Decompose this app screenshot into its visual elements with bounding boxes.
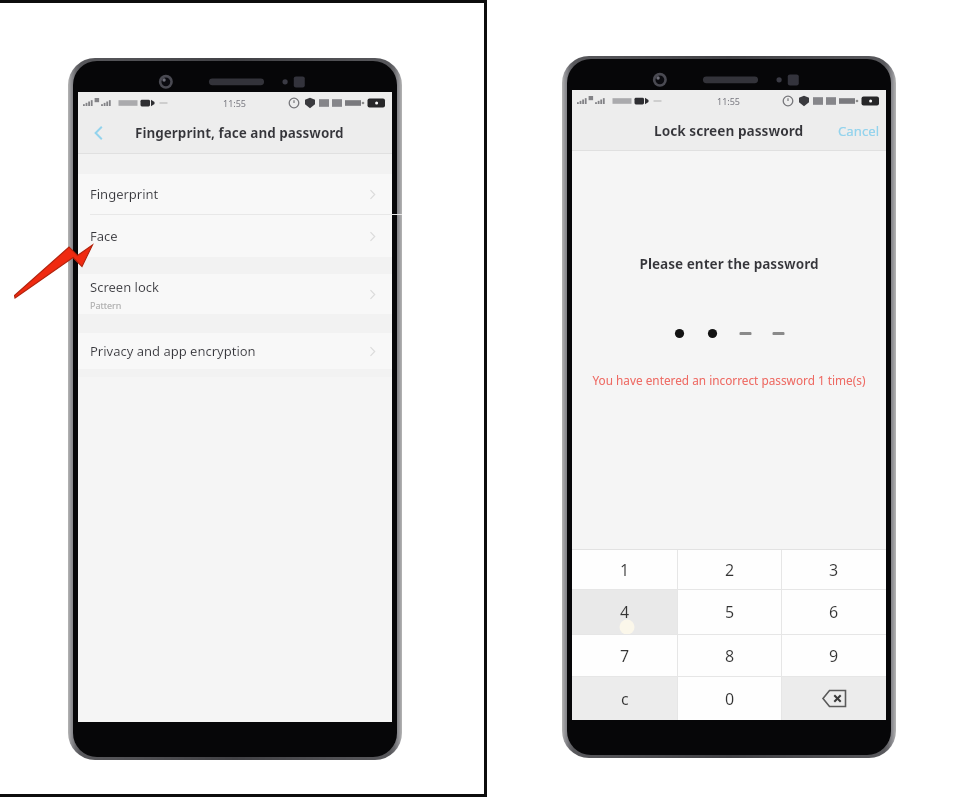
staticText: 1 [620, 559, 630, 581]
button[interactable]: 0 [678, 677, 782, 720]
staticText: You have entered an incorrect password 1… [572, 372, 886, 388]
button[interactable]: Fingerprint [78, 174, 392, 214]
button[interactable]: 3 [782, 550, 886, 589]
button[interactable]: 1 [572, 550, 678, 589]
staticText: 0 [725, 688, 735, 710]
other: Delete [822, 689, 847, 708]
staticText: Please enter the password [572, 254, 886, 273]
button[interactable]: 4 [572, 590, 678, 634]
staticText: 7 [620, 645, 630, 667]
staticText: Screen lock [90, 278, 159, 296]
button[interactable]: 9 [782, 635, 886, 676]
button[interactable]: Delete [782, 677, 886, 720]
staticText: Face [90, 227, 118, 245]
staticText: 11:55 [223, 97, 247, 109]
staticText: 5 [725, 601, 735, 623]
staticText: 9 [829, 645, 839, 667]
button[interactable]: Privacy and app encryption [78, 333, 392, 369]
button[interactable]: Cancel [832, 114, 886, 148]
button[interactable]: 2 [678, 550, 782, 589]
staticText: Lock screen password [654, 121, 804, 140]
staticText: 3 [829, 559, 839, 581]
staticText: 8 [725, 645, 735, 667]
staticText: Pattern [90, 299, 122, 311]
button[interactable]: Face [78, 215, 392, 257]
staticText: 6 [829, 601, 839, 623]
button[interactable]: Back [84, 119, 112, 147]
staticText: c [621, 688, 629, 710]
button[interactable]: 6 [782, 590, 886, 634]
staticText: Cancel [838, 122, 880, 140]
button[interactable]: 5 [678, 590, 782, 634]
staticText: Fingerprint, face and password [135, 124, 344, 142]
button[interactable]: c [572, 677, 678, 720]
staticText: Fingerprint [90, 185, 159, 203]
staticText: 11:55 [717, 95, 741, 107]
staticText: 2 [725, 559, 735, 581]
staticText: 4 [620, 601, 630, 623]
staticText: Privacy and app encryption [90, 342, 256, 360]
button[interactable]: 7 [572, 635, 678, 676]
button[interactable]: Screen lock [78, 274, 392, 314]
button[interactable]: 8 [678, 635, 782, 676]
